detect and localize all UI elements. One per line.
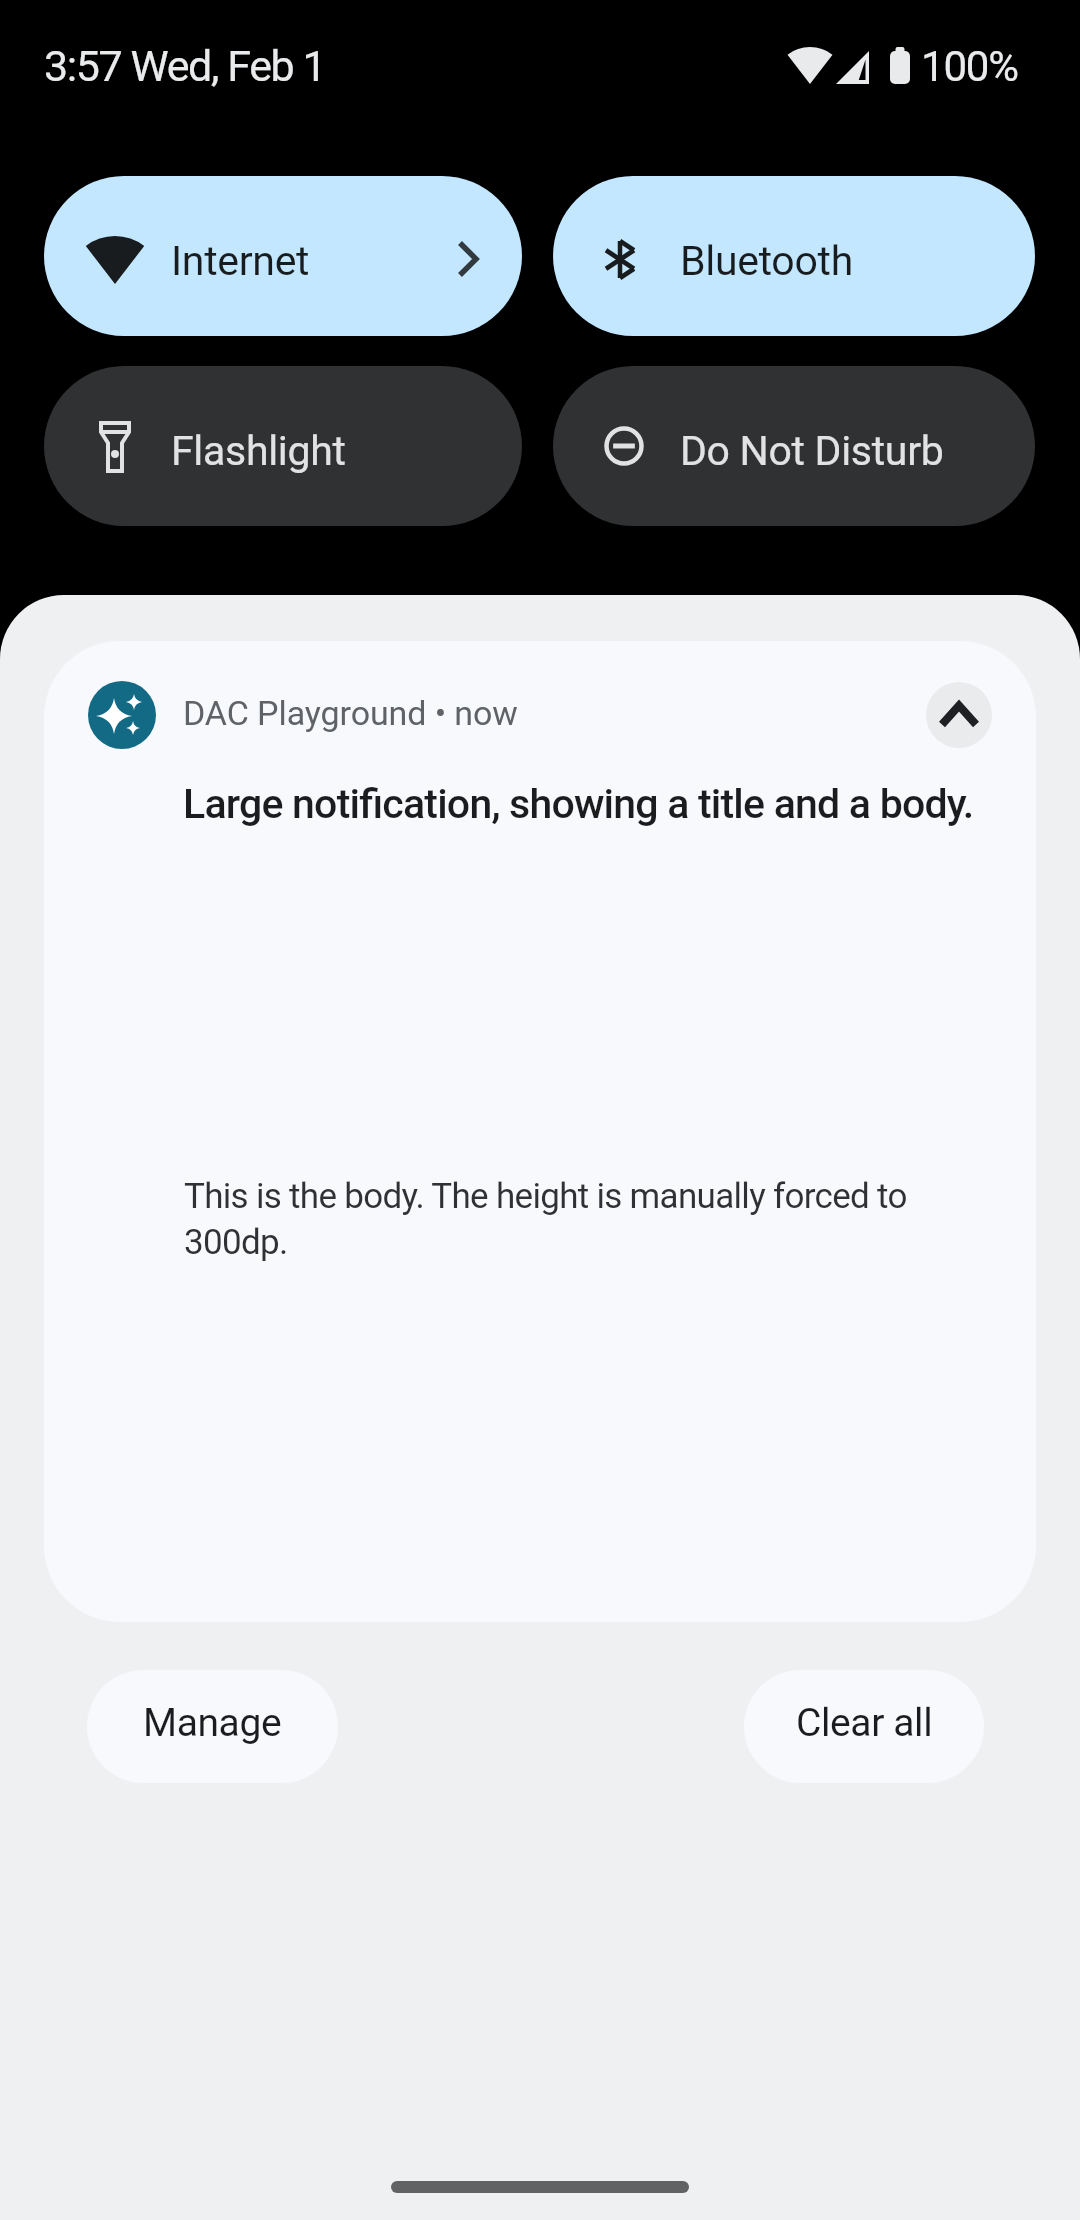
staticText: Manage: [143, 1700, 282, 1746]
staticText: Large notification, showing a title and …: [183, 780, 974, 828]
staticText: Do Not Disturb: [680, 427, 944, 475]
button[interactable]: Do Not Disturb: [553, 366, 1035, 526]
button[interactable]: Flashlight: [44, 366, 522, 526]
button[interactable]: Internet: [44, 176, 522, 336]
staticText: Internet: [171, 237, 310, 285]
staticText: DAC Playground • now: [183, 693, 518, 733]
staticText: This is the body. The height is manually…: [184, 1176, 907, 1263]
staticText: Flashlight: [171, 427, 346, 475]
staticText: Clear all: [796, 1700, 933, 1746]
button[interactable]: DAC Playground • now: [44, 641, 1036, 1622]
button[interactable]: Bluetooth: [553, 176, 1035, 336]
button[interactable]: Manage: [87, 1670, 338, 1783]
staticText: 3:57 Wed, Feb 1: [44, 41, 326, 91]
staticText: Bluetooth: [680, 237, 853, 285]
button[interactable]: Clear all: [744, 1670, 984, 1783]
button[interactable]: [926, 682, 992, 748]
staticText: 100%: [921, 42, 1018, 91]
